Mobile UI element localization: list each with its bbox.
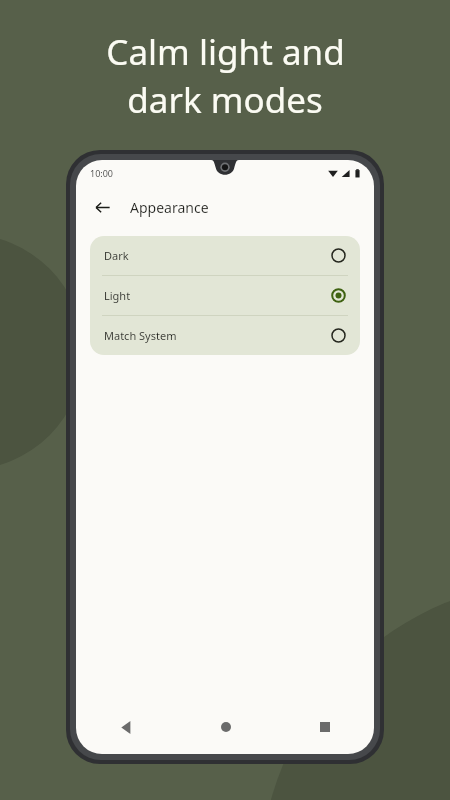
staticText: dark modes bbox=[127, 76, 323, 124]
button[interactable]: Light bbox=[90, 276, 360, 315]
button[interactable]: Recent apps bbox=[275, 704, 374, 750]
staticText: 10:00 bbox=[90, 167, 114, 179]
staticText: Calm light and bbox=[106, 28, 345, 76]
button[interactable]: Match System bbox=[90, 316, 360, 355]
button[interactable]: Back bbox=[84, 189, 120, 225]
staticText: Dark bbox=[104, 248, 129, 263]
staticText: Appearance bbox=[130, 198, 209, 217]
button[interactable]: Home bbox=[176, 704, 275, 750]
staticText: Light bbox=[104, 288, 131, 303]
staticText: Match System bbox=[104, 328, 177, 343]
button[interactable]: Dark bbox=[90, 236, 360, 275]
button[interactable]: Back bbox=[76, 704, 176, 750]
